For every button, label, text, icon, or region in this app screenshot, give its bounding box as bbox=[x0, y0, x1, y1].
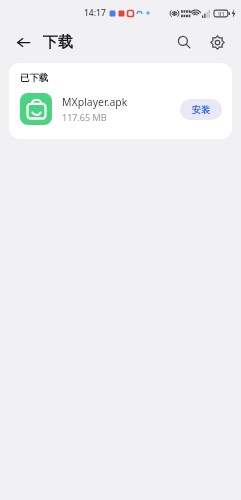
staticText: 下载 bbox=[43, 33, 73, 52]
button[interactable]: MXplayer.apk bbox=[9, 92, 232, 126]
staticText: 91 bbox=[218, 10, 225, 17]
staticText: 已下载 bbox=[20, 72, 49, 84]
staticText: 117.65 MB bbox=[62, 111, 107, 123]
staticText: 安装 bbox=[192, 104, 210, 115]
button[interactable]: Search bbox=[171, 29, 197, 55]
button[interactable]: Settings bbox=[204, 29, 230, 55]
staticText: MXplayer.apk bbox=[62, 95, 128, 109]
button[interactable]: 安装 bbox=[180, 99, 222, 120]
staticText: 14:17 bbox=[84, 7, 106, 19]
button[interactable]: Back bbox=[11, 30, 35, 54]
